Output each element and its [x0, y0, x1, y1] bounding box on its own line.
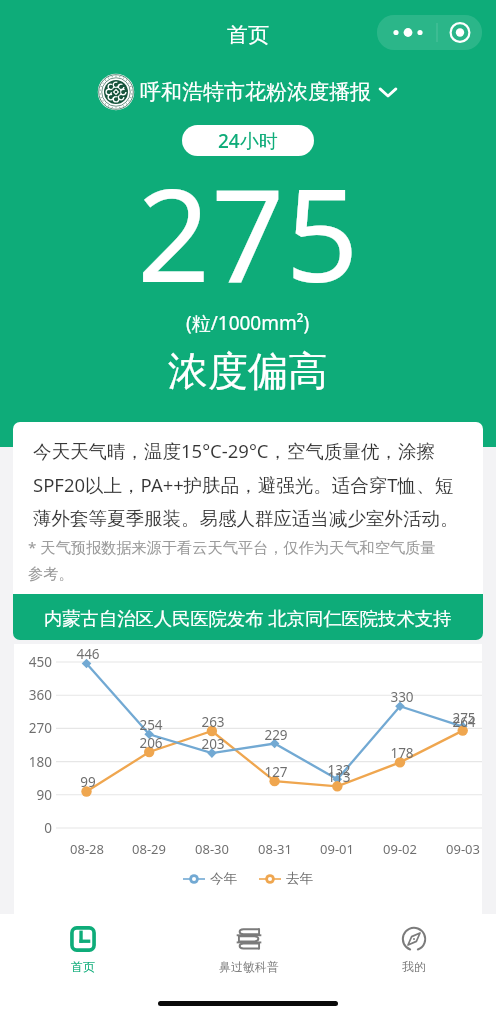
staticText: 275 — [137, 145, 360, 319]
staticText: 180 — [11, 753, 52, 771]
staticText: 264 — [434, 713, 494, 731]
staticText: 229 — [246, 726, 306, 744]
staticText: 254 — [121, 716, 181, 734]
staticText: 127 — [246, 763, 306, 781]
staticText: 90 — [11, 786, 52, 804]
staticText: * 天气预报数据来源于看云天气平台，仅作为天气和空气质量 参考。 — [28, 537, 436, 583]
button[interactable]: 我的 — [331, 914, 496, 984]
button[interactable]: 鼻过敏科普 — [166, 914, 331, 984]
staticText: 450 — [11, 653, 52, 671]
staticText: 08-28 — [57, 840, 117, 858]
staticText: 360 — [11, 686, 52, 704]
staticText: 263 — [183, 713, 243, 731]
staticText: (粒/1000mm²) — [186, 310, 310, 336]
staticText: 0 — [11, 819, 52, 837]
staticText: 446 — [58, 645, 118, 663]
staticText: 09-02 — [370, 840, 430, 858]
staticText: 08-30 — [182, 840, 242, 858]
staticText: 鼻过敏科普 — [219, 959, 279, 974]
staticText: 09-01 — [307, 840, 367, 858]
staticText: 今天天气晴，温度15°C-29°C，空气质量优，涂擦 SPF20以上，PA++护… — [33, 438, 459, 530]
other: Change city — [377, 81, 399, 103]
staticText: 113 — [309, 768, 369, 786]
staticText: 206 — [121, 734, 181, 752]
staticText: 132 — [309, 761, 369, 779]
button[interactable]: More options — [377, 15, 482, 50]
staticText: 08-29 — [119, 840, 179, 858]
button[interactable]: 内蒙古自治区人民医院发布 北京同仁医院技术支持 — [13, 594, 483, 640]
staticText: 270 — [11, 719, 52, 737]
staticText: 178 — [372, 744, 432, 762]
staticText: 275 — [434, 709, 494, 727]
staticText: 首页 — [227, 22, 269, 48]
staticText: 去年 — [286, 870, 313, 887]
staticText: 09-03 — [433, 840, 493, 858]
staticText: 呼和浩特市花粉浓度播报 — [140, 79, 371, 105]
button[interactable]: 24小时 — [182, 125, 314, 156]
staticText: 内蒙古自治区人民医院发布 北京同仁医院技术支持 — [44, 605, 452, 630]
staticText: 99 — [58, 773, 118, 791]
button[interactable]: 首页 — [0, 914, 166, 984]
staticText: 24小时 — [218, 128, 278, 154]
staticText: 330 — [372, 688, 432, 706]
button[interactable]: 去年 — [259, 870, 313, 887]
staticText: 浓度偏高 — [168, 346, 328, 396]
button[interactable]: 今年 — [183, 870, 237, 887]
staticText: 08-31 — [245, 840, 305, 858]
staticText: 我的 — [402, 959, 426, 974]
staticText: 203 — [183, 735, 243, 753]
staticText: 今年 — [210, 870, 237, 887]
staticText: 首页 — [71, 959, 95, 974]
